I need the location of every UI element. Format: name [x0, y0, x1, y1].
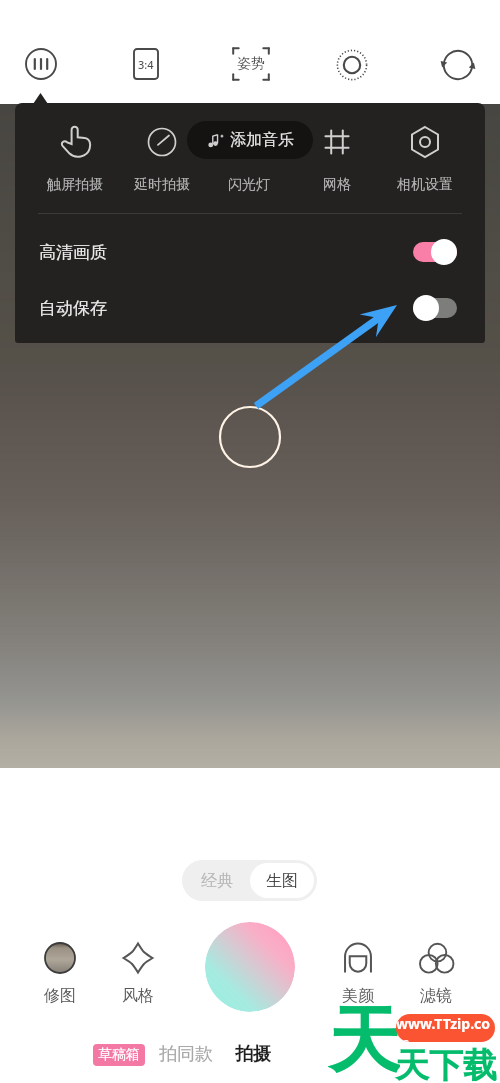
staticText: 修图 [44, 986, 76, 1006]
button[interactable]: Beauty [331, 44, 373, 86]
staticText: 生图 [266, 871, 298, 891]
button[interactable]: 拍同款 [157, 1040, 215, 1069]
button[interactable]: 相机设置 [381, 103, 469, 194]
staticText: 闪光灯 [228, 176, 270, 194]
staticText: 3:4 [138, 57, 154, 72]
button[interactable]: 拍摄 [233, 1040, 273, 1069]
staticText: 美颜 [342, 986, 374, 1006]
button[interactable]: 闪光灯 [205, 103, 293, 194]
button[interactable]: 网格 [293, 103, 381, 194]
button[interactable]: 滤镜 [414, 940, 458, 1006]
staticText: 滤镜 [420, 986, 452, 1006]
staticText: 天下载 [395, 1044, 497, 1083]
button[interactable]: 延时拍摄 [118, 103, 205, 194]
button[interactable]: 美颜 [336, 940, 380, 1006]
button[interactable]: 触屏拍摄 [31, 103, 118, 194]
staticText: 拍摄 [235, 1043, 271, 1066]
button[interactable]: 姿势 [232, 47, 270, 81]
staticText: 触屏拍摄 [47, 176, 103, 194]
staticText: 延时拍摄 [134, 176, 190, 194]
staticText: 相机设置 [397, 176, 453, 194]
button[interactable]: 草稿箱 [93, 1044, 145, 1066]
button[interactable]: 3:4 [131, 45, 161, 83]
button[interactable]: Shutter [205, 922, 295, 1012]
staticText: 经典 [201, 871, 233, 891]
staticText: 天 [328, 996, 400, 1079]
button[interactable]: 风格 [116, 940, 160, 1006]
staticText: 姿势 [237, 55, 265, 73]
staticText: 添加音乐 [230, 130, 294, 150]
button[interactable]: 自动保存 [15, 286, 485, 330]
staticText: www.TTzip.com [396, 1014, 495, 1042]
staticText: 拍同款 [159, 1043, 213, 1066]
staticText: 网格 [323, 176, 351, 194]
button[interactable]: 修图 [38, 940, 82, 1006]
staticText: 自动保存 [39, 298, 107, 319]
button[interactable]: 高清画质 [15, 230, 485, 274]
button[interactable]: Switch camera [437, 44, 479, 86]
button[interactable]: Menu [18, 41, 64, 87]
staticText: 风格 [122, 986, 154, 1006]
staticText: 草稿箱 [98, 1046, 140, 1064]
button[interactable]: 生图 [250, 863, 314, 898]
staticText: 高清画质 [39, 242, 107, 263]
button[interactable]: 添加音乐 [187, 121, 313, 159]
button[interactable]: 经典 [185, 863, 249, 898]
